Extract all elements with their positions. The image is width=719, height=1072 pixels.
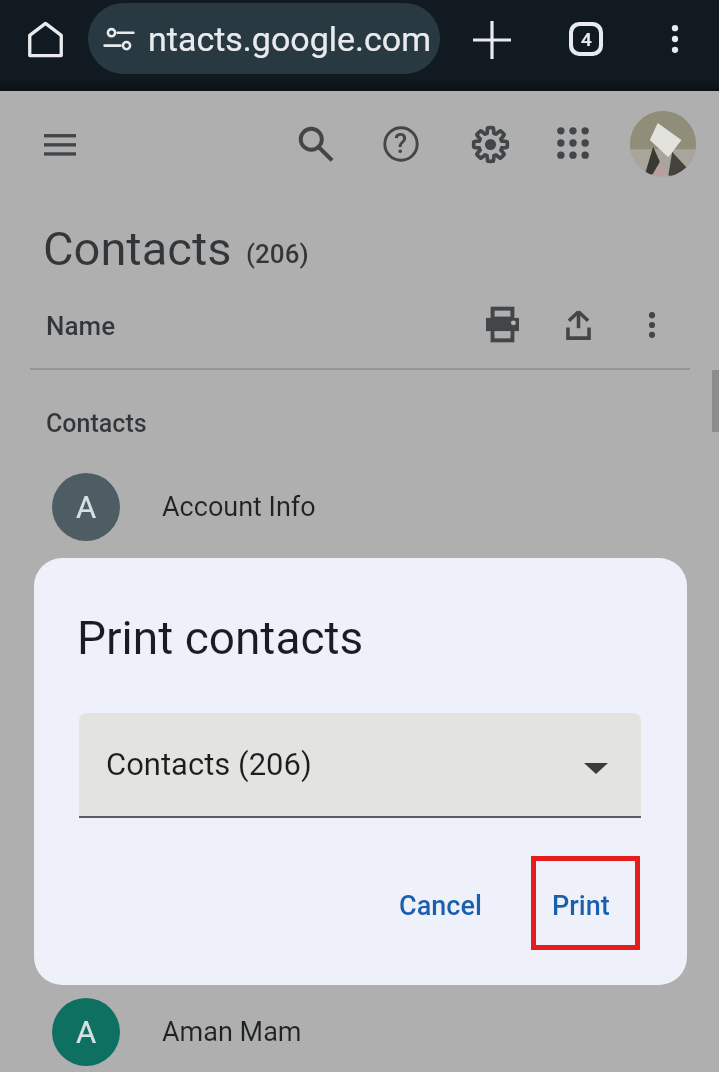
button[interactable]: Print (472, 294, 532, 354)
button[interactable]: More options (644, 8, 706, 70)
button[interactable]: Cancel (375, 870, 506, 942)
button[interactable]: Switch tabs, 4 open (554, 7, 618, 71)
button[interactable]: Main menu (28, 113, 92, 177)
staticText: ntacts.google.com (148, 19, 432, 59)
button[interactable]: Settings (460, 114, 520, 174)
staticText: (206) (246, 239, 309, 269)
staticText: 4 (581, 28, 592, 50)
button[interactable]: Google apps (544, 114, 602, 172)
button[interactable]: More options (622, 295, 682, 355)
staticText: Name (46, 311, 116, 341)
button[interactable]: A (0, 984, 719, 1072)
button[interactable]: Google Account (630, 111, 696, 177)
staticText: Contacts (46, 409, 147, 438)
button[interactable]: A (0, 459, 719, 555)
staticText: Contacts (43, 221, 232, 276)
staticText: A (76, 1014, 97, 1050)
staticText: Print contacts (77, 611, 364, 665)
staticText: Account Info (162, 491, 316, 523)
staticText: Aman Mam (162, 1016, 302, 1048)
button[interactable]: Help (372, 115, 430, 173)
button[interactable]: Home (14, 8, 76, 70)
button[interactable]: Search (286, 115, 344, 173)
staticText: Cancel (399, 890, 482, 922)
staticText: ? (394, 128, 408, 160)
button[interactable]: Export (548, 294, 608, 354)
staticText: Contacts (206) (106, 746, 312, 782)
button[interactable]: Print (528, 870, 634, 942)
button[interactable]: ntacts.google.com (88, 3, 440, 74)
button[interactable]: New tab (460, 8, 524, 72)
staticText: Print (552, 890, 610, 922)
staticText: A (76, 489, 97, 525)
button[interactable]: Contacts (206) (79, 713, 641, 819)
